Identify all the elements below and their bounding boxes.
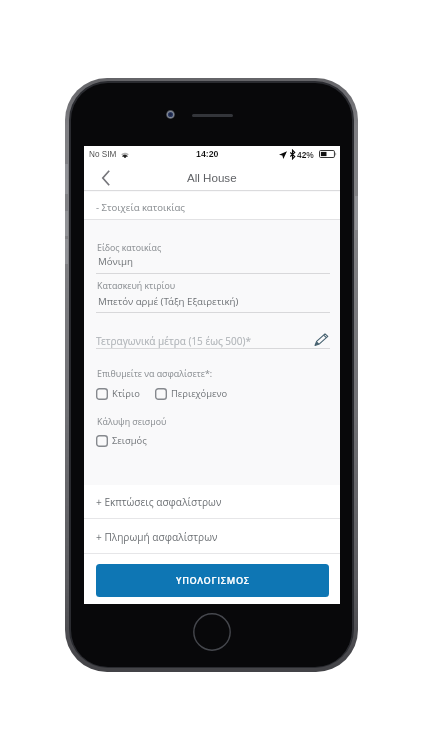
button[interactable]: Σεισμός <box>96 434 147 447</box>
staticText: Κτίριο <box>112 387 140 400</box>
button[interactable]: - Στοιχεία κατοικίας <box>84 192 340 220</box>
staticText: Σεισμός <box>112 434 147 447</box>
staticText: Είδος κατοικίας <box>97 242 162 254</box>
staticText: ΥΠΟΛΟΓΙΣΜΟΣ <box>176 574 250 587</box>
button[interactable]: + Εκπτώσεις ασφαλίστρων <box>84 485 340 519</box>
button[interactable]: + Πληρωμή ασφαλίστρων <box>84 519 340 554</box>
staticText: Επιθυμείτε να ασφαλίσετε*: <box>97 368 213 380</box>
button[interactable]: Περιεχόμενο <box>155 387 228 400</box>
staticText: 14:20 <box>196 149 219 159</box>
button[interactable]: Μπετόν αρμέ (Τάξη Εξαιρετική) <box>98 295 239 308</box>
staticText: No SIM <box>89 150 117 159</box>
button[interactable]: Back <box>90 164 120 191</box>
staticText: Κατασκευή κτιρίου <box>97 280 176 292</box>
staticText: Κάλυψη σεισμού <box>97 416 167 428</box>
button[interactable]: ΥΠΟΛΟΓΙΣΜΟΣ <box>96 564 329 597</box>
staticText: Περιεχόμενο <box>171 387 228 400</box>
button[interactable]: Κτίριο <box>96 387 140 400</box>
button[interactable]: Μόνιμη <box>98 255 133 268</box>
other: Edit <box>311 331 331 349</box>
staticText: Τετραγωνικά μέτρα (15 έως 500)* <box>96 334 251 348</box>
staticText: All House <box>187 171 237 184</box>
staticText: + Πληρωμή ασφαλίστρων <box>96 530 218 544</box>
button[interactable]: Τετραγωνικά μέτρα (15 έως 500)* <box>84 333 340 351</box>
staticText: 42% <box>297 150 314 159</box>
staticText: + Εκπτώσεις ασφαλίστρων <box>96 495 222 509</box>
staticText: - Στοιχεία κατοικίας <box>96 201 185 214</box>
